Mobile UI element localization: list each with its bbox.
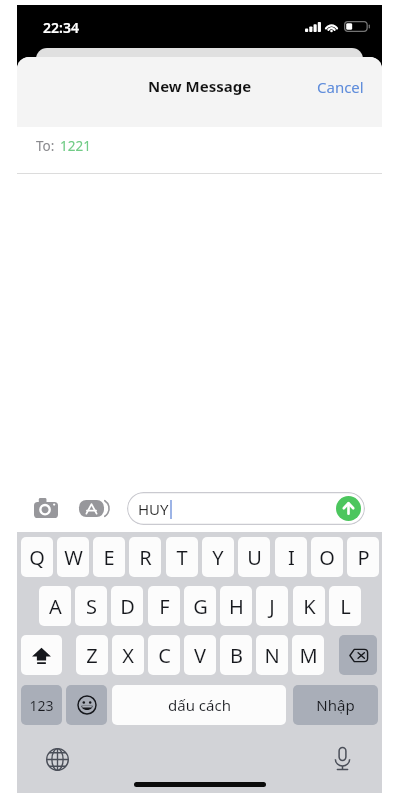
staticText: C — [158, 642, 171, 669]
staticText: G — [193, 593, 208, 620]
staticText: Q — [29, 544, 45, 571]
button[interactable]: P — [347, 537, 379, 577]
button[interactable]: M — [292, 635, 324, 675]
staticText: W — [64, 544, 83, 571]
button[interactable]: S — [75, 586, 107, 626]
staticText: I — [288, 544, 295, 571]
button[interactable]: H — [220, 586, 252, 626]
button[interactable]: 123 — [21, 685, 62, 725]
button[interactable]: L — [329, 586, 361, 626]
staticText: B — [230, 642, 243, 669]
button[interactable]: Nhập — [293, 685, 378, 725]
staticText: K — [303, 593, 316, 620]
staticText: X — [122, 642, 134, 669]
button[interactable]: C — [148, 635, 180, 675]
button[interactable]: X — [112, 635, 144, 675]
staticText: HUY — [138, 499, 169, 519]
staticText: A — [49, 593, 62, 620]
button[interactable]: Q — [21, 537, 53, 577]
button[interactable]: U — [238, 537, 270, 577]
button[interactable]: To: — [17, 123, 382, 168]
button[interactable]: App Store — [79, 500, 108, 517]
button[interactable]: J — [256, 586, 288, 626]
button[interactable]: E — [93, 537, 125, 577]
button[interactable]: Dictate — [334, 746, 351, 771]
staticText: 22:34 — [43, 18, 79, 37]
button[interactable]: Cancel — [299, 69, 382, 105]
button[interactable]: Y — [202, 537, 234, 577]
button[interactable]: B — [220, 635, 252, 675]
button[interactable]: dấu cách — [112, 685, 286, 725]
staticText: E — [103, 544, 115, 571]
staticText: V — [194, 642, 206, 669]
staticText: L — [340, 593, 351, 620]
button[interactable]: W — [57, 537, 89, 577]
button[interactable]: Backspace — [339, 635, 377, 675]
staticText: O — [319, 544, 335, 571]
button[interactable]: O — [311, 537, 343, 577]
staticText: 123 — [29, 696, 54, 715]
staticText: Z — [86, 642, 98, 669]
button[interactable]: G — [184, 586, 216, 626]
button[interactable]: R — [129, 537, 161, 577]
staticText: P — [357, 544, 370, 571]
staticText: To: — [36, 137, 55, 155]
button[interactable]: A — [39, 586, 71, 626]
button[interactable]: Take photo — [34, 498, 58, 518]
button[interactable]: V — [184, 635, 216, 675]
staticText: dấu cách — [168, 695, 231, 715]
button[interactable]: N — [256, 635, 288, 675]
staticText: N — [264, 642, 280, 669]
staticText: F — [159, 593, 170, 620]
staticText: U — [247, 544, 262, 571]
button[interactable]: D — [111, 586, 143, 626]
button[interactable]: T — [166, 537, 198, 577]
button[interactable]: Z — [76, 635, 108, 675]
staticText: Nhập — [316, 695, 355, 715]
staticText: New Message — [148, 76, 252, 96]
button[interactable]: K — [293, 586, 325, 626]
staticText: M — [299, 642, 318, 669]
staticText: J — [269, 593, 275, 620]
button[interactable]: F — [148, 586, 180, 626]
staticText: T — [176, 544, 188, 571]
button[interactable]: Send — [336, 496, 361, 521]
staticText: R — [139, 544, 152, 571]
staticText: H — [229, 593, 244, 620]
staticText: S — [86, 593, 97, 620]
staticText: D — [120, 593, 135, 620]
staticText: Cancel — [317, 77, 364, 97]
button[interactable]: Emoji — [66, 685, 107, 725]
button[interactable]: HUY — [127, 492, 365, 525]
staticText: Y — [212, 544, 224, 571]
button[interactable]: Change keyboard — [46, 748, 69, 771]
button[interactable]: I — [275, 537, 307, 577]
button[interactable]: Shift — [21, 635, 62, 675]
staticText: 1221 — [60, 137, 91, 155]
